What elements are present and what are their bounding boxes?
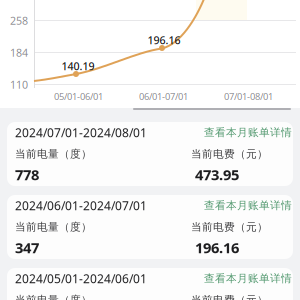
staticText: 184 [10, 45, 28, 60]
staticText: 查看本月账单详情 [204, 126, 292, 139]
staticText: 当前电量（度） [15, 220, 92, 233]
staticText: 473.95 [195, 165, 239, 184]
button[interactable]: 2024/07/01-2024/08/01 [7, 122, 293, 186]
staticText: 196.16 [147, 33, 180, 47]
staticText: 当前电费（元） [191, 220, 268, 233]
staticText: 778 [15, 165, 39, 184]
staticText: 2024/07/01-2024/08/01 [15, 124, 147, 140]
staticText: 当前电费（元） [191, 147, 268, 160]
staticText: 当前电量（度） [15, 293, 92, 300]
staticText: 05/01-06/01 [54, 90, 103, 103]
staticText: 06/01-07/01 [139, 90, 188, 103]
staticText: 258 [10, 13, 28, 28]
button[interactable]: 2024/05/01-2024/06/01 [7, 268, 293, 300]
staticText: 196.16 [195, 238, 239, 257]
staticText: 查看本月账单详情 [204, 272, 292, 285]
staticText: 2024/06/01-2024/07/01 [15, 197, 147, 213]
staticText: 查看本月账单详情 [204, 199, 292, 212]
staticText: 当前电量（度） [15, 147, 92, 160]
staticText: 347 [15, 238, 39, 257]
staticText: 07/01-08/01 [224, 90, 273, 103]
staticText: 当前电费（元） [191, 293, 268, 300]
button[interactable]: 2024/06/01-2024/07/01 [7, 195, 293, 259]
staticText: 2024/05/01-2024/06/01 [15, 270, 147, 286]
staticText: 110 [10, 77, 28, 92]
staticText: 140.19 [61, 59, 94, 73]
